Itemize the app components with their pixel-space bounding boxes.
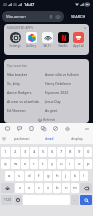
button[interactable]: u <box>57 159 65 169</box>
staticText: 6 <box>51 149 54 155</box>
button[interactable]: Settings <box>61 124 73 133</box>
button[interactable]: a <box>5 171 14 181</box>
button[interactable]: Netflix <box>55 32 71 48</box>
staticText: 14:47 <box>24 2 35 7</box>
staticText: Ed Sheeran <box>7 108 26 113</box>
staticText: l <box>83 173 85 179</box>
button[interactable]: 5 <box>39 147 47 157</box>
staticText: 2 <box>14 149 17 155</box>
button[interactable]: 3 <box>21 147 29 157</box>
button[interactable]: c <box>35 183 43 193</box>
button[interactable]: Expand suggestions <box>0 133 8 144</box>
button[interactable]: r <box>30 159 38 169</box>
button[interactable]: k <box>71 171 79 181</box>
button[interactable]: 2 <box>11 147 20 157</box>
staticText: p <box>87 161 90 167</box>
button[interactable]: 6 <box>48 147 56 157</box>
button[interactable]: Search <box>80 195 92 205</box>
staticText: 9 <box>78 149 81 155</box>
staticText: . <box>74 197 76 203</box>
staticText: Esporsm 2023 <box>45 90 69 95</box>
staticText: w <box>14 161 18 167</box>
button[interactable]: Mauaman <box>2 11 64 22</box>
button[interactable]: i <box>66 159 74 169</box>
button[interactable]: 7 <box>57 147 65 157</box>
button[interactable]: g <box>44 171 52 181</box>
button[interactable]: Nba bracket <box>7 70 44 79</box>
button[interactable]: SEARCH <box>64 11 93 22</box>
button[interactable]: More <box>83 125 90 132</box>
button[interactable]: Expand <box>83 26 87 30</box>
staticText: 4 <box>33 149 36 155</box>
staticText: k <box>74 173 77 179</box>
staticText: display <box>71 136 83 141</box>
button[interactable]: q <box>1 159 10 169</box>
button[interactable]: v <box>44 183 52 193</box>
button[interactable]: 0 <box>84 147 92 157</box>
button[interactable]: Harry Delaforce <box>45 79 86 88</box>
button[interactable]: 9 <box>75 147 83 157</box>
staticText: d <box>28 173 31 179</box>
button[interactable]: Ed Sheeran <box>7 106 44 115</box>
button[interactable]: 4 <box>30 147 38 157</box>
button[interactable]: d <box>25 171 34 181</box>
button[interactable]: Aaron Rodgers <box>7 88 44 97</box>
button[interactable]: Theme <box>49 124 61 133</box>
button[interactable]: Aston villa vs fulham <box>45 70 86 79</box>
staticText: s <box>18 173 21 179</box>
button[interactable]: Xx, kitty <box>7 79 44 88</box>
button[interactable]: o <box>75 159 83 169</box>
button[interactable]: Esporsm 2023 <box>45 88 86 97</box>
staticText: x <box>28 185 31 191</box>
button[interactable]: 1 <box>1 147 10 157</box>
staticText: Settings <box>7 44 23 48</box>
button[interactable]: dead <box>36 133 63 144</box>
button[interactable]: z <box>15 183 24 193</box>
button[interactable]: Clipboard <box>25 124 37 133</box>
button[interactable]: display <box>63 133 90 144</box>
button[interactable]: Gallery <box>23 32 39 48</box>
staticText: e <box>24 161 27 167</box>
button[interactable]: f <box>35 171 43 181</box>
button[interactable]: w <box>11 159 20 169</box>
button[interactable]: Numbers <box>1 195 13 205</box>
button[interactable]: Settings <box>7 32 23 48</box>
button[interactable]: h <box>53 171 61 181</box>
button[interactable]: packman <box>8 133 36 144</box>
button[interactable]: Shift <box>1 183 14 193</box>
button[interactable]: Emoji <box>1 124 13 133</box>
button[interactable]: As gent <box>45 106 86 115</box>
button[interactable]: m <box>71 183 79 193</box>
button[interactable]: e <box>21 159 29 169</box>
staticText: o <box>78 161 81 167</box>
button[interactable]: Jesus Day <box>45 97 86 106</box>
button[interactable]: x <box>25 183 34 193</box>
staticText: q <box>4 161 7 167</box>
button[interactable]: n <box>62 183 70 193</box>
button[interactable]: s <box>15 171 24 181</box>
button[interactable]: j <box>62 171 70 181</box>
staticText: 4G <box>3 3 7 7</box>
button[interactable]: Emoji <box>14 195 22 205</box>
button[interactable]: Wi-Fi <box>39 32 55 48</box>
staticText: b <box>56 185 59 191</box>
button[interactable]: 8 <box>66 147 74 157</box>
button[interactable]: Backspace <box>80 183 92 193</box>
button[interactable]: Al-nasr vs al-wehda <box>7 97 44 106</box>
button[interactable]: p <box>84 159 92 169</box>
button[interactable]: l <box>80 171 88 181</box>
button[interactable]: t <box>39 159 47 169</box>
staticText: As gent <box>45 108 58 113</box>
button[interactable]: b <box>53 183 61 193</box>
staticText: i <box>69 161 71 167</box>
button[interactable]: Translate <box>37 124 49 133</box>
staticText: SUGGESTED APPS <box>7 26 33 30</box>
button[interactable]: y <box>48 159 56 169</box>
button[interactable]: Refresh <box>37 116 57 123</box>
staticText: h <box>56 173 59 179</box>
button[interactable]: Stickers <box>13 124 25 133</box>
staticText: g <box>47 173 50 179</box>
button[interactable]: AppCall <box>71 32 86 48</box>
